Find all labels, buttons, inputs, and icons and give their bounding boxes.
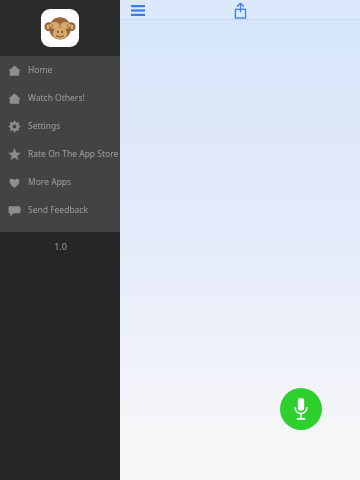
staticText: Send Feedback	[28, 204, 88, 216]
staticText: Watch Others!	[28, 92, 85, 104]
button[interactable]: Send Feedback	[0, 196, 120, 224]
staticText: Settings	[28, 120, 61, 132]
staticText: More Apps	[28, 176, 72, 188]
button[interactable]: Open navigation menu	[124, 0, 152, 20]
staticText: 1.0	[54, 240, 67, 252]
button[interactable]: Record voice	[280, 388, 322, 430]
button[interactable]: Watch Others!	[0, 84, 120, 112]
button[interactable]: Rate On The App Store	[0, 140, 120, 168]
button[interactable]: Share	[227, 0, 253, 20]
button[interactable]: More Apps	[0, 168, 120, 196]
staticText: Rate On The App Store	[28, 148, 119, 160]
button[interactable]: App icon	[41, 9, 79, 47]
button[interactable]: Home	[0, 56, 120, 84]
staticText: Home	[28, 64, 53, 76]
button[interactable]: Settings	[0, 112, 120, 140]
